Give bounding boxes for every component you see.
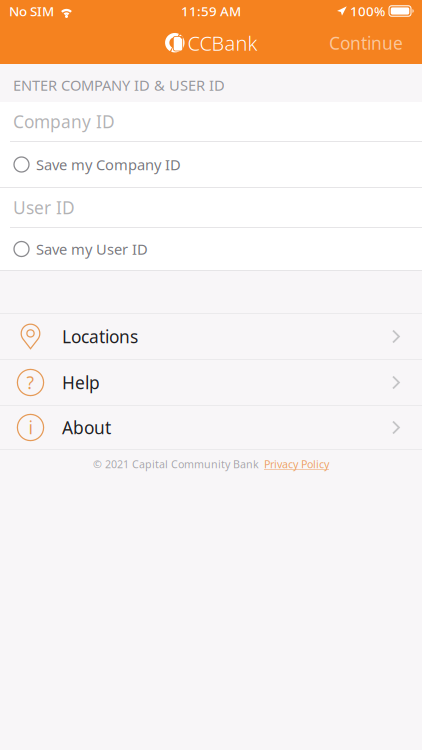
- staticText: © 2021 Capital Community Bank: [93, 457, 259, 471]
- staticText: CCBank: [187, 30, 257, 56]
- button[interactable]: Locations: [0, 314, 422, 359]
- staticText: Help: [62, 371, 100, 394]
- button[interactable]: Save my Company ID: [0, 142, 422, 187]
- button[interactable]: Save my User ID: [0, 228, 422, 270]
- staticText: Privacy Policy: [264, 457, 329, 471]
- staticText: ?: [26, 371, 34, 394]
- button[interactable]: Continue: [310, 23, 422, 63]
- staticText: i: [28, 416, 32, 439]
- staticText: No SIM: [9, 2, 54, 20]
- button[interactable]: ?: [0, 360, 422, 405]
- button[interactable]: i: [0, 406, 422, 449]
- staticText: User ID: [13, 196, 75, 219]
- staticText: Continue: [329, 31, 403, 54]
- staticText: 11:59 AM: [181, 2, 241, 20]
- staticText: Save my User ID: [36, 239, 148, 259]
- staticText: ENTER COMPANY ID & USER ID: [13, 75, 225, 95]
- staticText: About: [62, 416, 111, 439]
- staticText: Save my Company ID: [36, 155, 181, 174]
- staticText: Company ID: [13, 110, 115, 133]
- button[interactable]: Privacy Policy: [264, 457, 329, 471]
- staticText: 100%: [350, 2, 385, 20]
- staticText: Locations: [62, 325, 138, 348]
